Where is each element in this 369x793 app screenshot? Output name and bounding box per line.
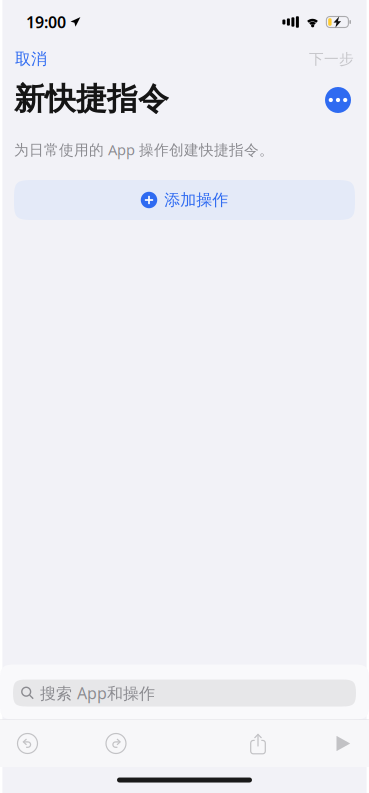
button[interactable]: 下一步 [294, 45, 369, 73]
staticText: 新快捷指令 [14, 80, 169, 118]
staticText: 下一步 [309, 50, 354, 68]
button[interactable]: 更多 [322, 83, 355, 115]
button[interactable]: 共享 [180, 723, 336, 763]
button[interactable]: 运行 [336, 723, 361, 763]
staticText: 为日常使用的 App 操作创建快捷指令。 [14, 140, 274, 159]
staticText: 19:00 [26, 11, 66, 33]
staticText: 添加操作 [164, 190, 228, 210]
staticText: 搜索 App和操作 [40, 682, 155, 704]
button[interactable]: 撤销 [3, 723, 52, 763]
button[interactable]: 重做 [52, 723, 180, 763]
button[interactable]: 添加操作 [0, 180, 369, 220]
button[interactable]: 取消 [0, 44, 62, 74]
staticText: 取消 [15, 49, 47, 69]
